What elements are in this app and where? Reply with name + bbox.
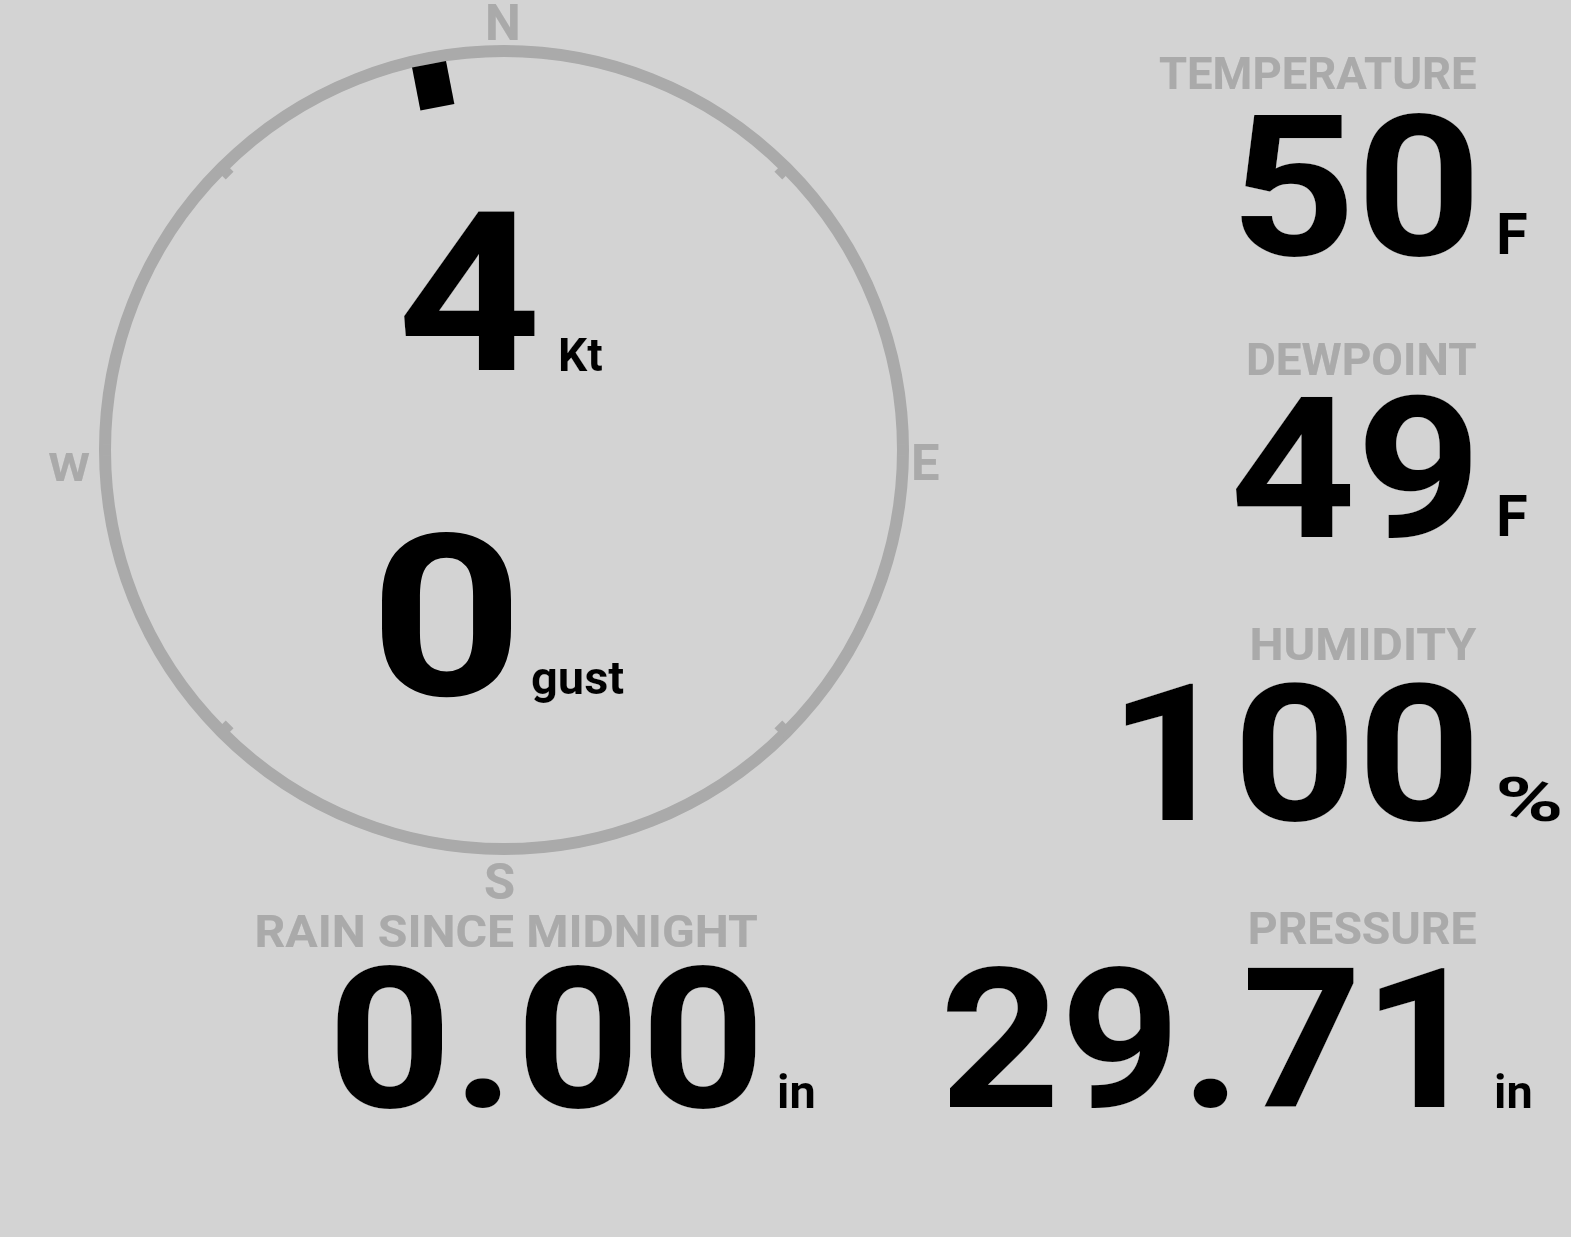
staticText: in: [777, 1064, 816, 1119]
staticText: W: [48, 444, 91, 490]
staticText: Kt: [558, 328, 603, 382]
staticText: 0.00: [327, 925, 766, 1155]
staticText: 100: [1108, 643, 1482, 867]
staticText: DEWPOINT: [1246, 334, 1477, 386]
staticText: 49: [1230, 355, 1482, 585]
staticText: F: [1496, 482, 1528, 550]
staticText: RAIN SINCE MIDNIGHT: [255, 906, 758, 958]
staticText: TEMPERATURE: [1159, 48, 1477, 100]
staticText: S: [484, 852, 516, 911]
staticText: 29.71: [940, 927, 1483, 1154]
button[interactable]: Dewpoint 49 degrees Fahrenheit: [1000, 300, 1560, 565]
staticText: PRESSURE: [1248, 903, 1477, 955]
staticText: F: [1496, 200, 1528, 268]
staticText: %: [1495, 763, 1564, 836]
button[interactable]: Wind 4 knots, gusting 0, from the north: [20, 10, 980, 900]
button[interactable]: Temperature 50 degrees Fahrenheit: [1000, 20, 1560, 285]
staticText: N: [485, 0, 521, 52]
other: Wind direction compass: [0, 0, 1571, 1237]
staticText: E: [911, 433, 940, 492]
staticText: 50: [1230, 73, 1482, 303]
staticText: 4: [397, 164, 542, 424]
staticText: HUMIDITY: [1249, 619, 1477, 671]
staticText: gust: [531, 650, 625, 705]
button[interactable]: Humidity 100 percent: [1000, 585, 1560, 850]
button[interactable]: Pressure 29.71 inches: [860, 880, 1560, 1130]
staticText: in: [1494, 1064, 1533, 1119]
staticText: 0: [369, 485, 524, 750]
button[interactable]: Rain since midnight 0.00 inches: [180, 880, 800, 1130]
